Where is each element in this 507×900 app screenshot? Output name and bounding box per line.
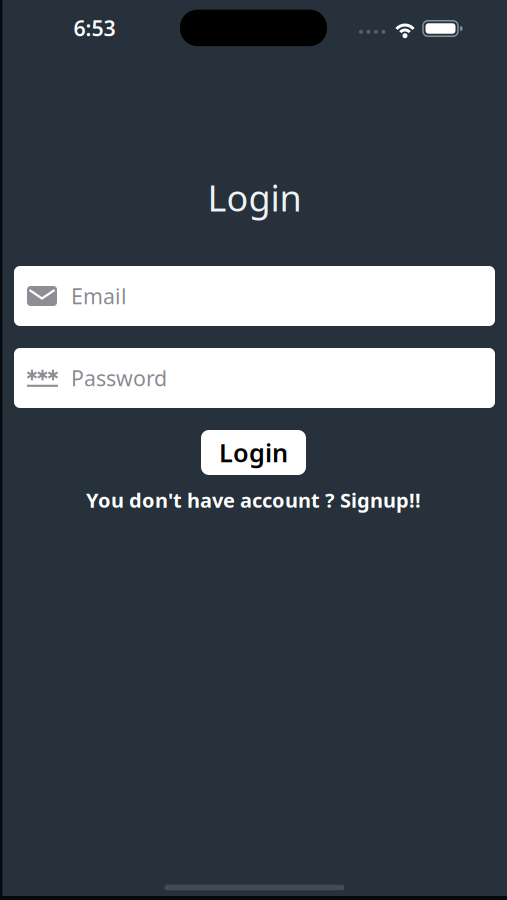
staticText: Email	[71, 282, 127, 310]
staticText: 6:53	[73, 14, 115, 42]
button[interactable]: Email	[14, 266, 495, 326]
staticText: Login	[219, 436, 288, 469]
staticText: Password	[71, 364, 167, 392]
button[interactable]: Password	[14, 348, 495, 408]
button[interactable]: Login	[201, 430, 306, 475]
staticText: You don't have account ? Signup!!	[86, 487, 421, 513]
staticText: Login	[207, 174, 301, 221]
button[interactable]: You don't have account ? Signup!!	[86, 487, 421, 513]
